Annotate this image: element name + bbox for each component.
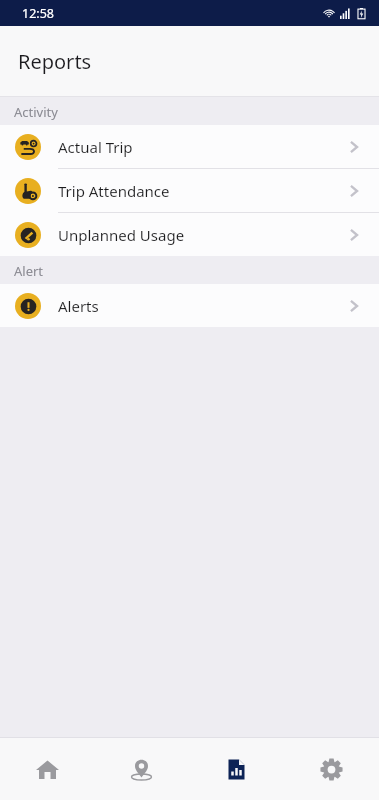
button[interactable]: Unplanned Usage <box>0 213 379 256</box>
staticText: Activity <box>14 103 58 121</box>
button[interactable]: Trip Attendance <box>0 169 379 212</box>
button[interactable]: Reports <box>189 738 284 800</box>
staticText: 12:58 <box>22 5 54 22</box>
button[interactable]: Map <box>94 738 189 800</box>
button[interactable]: Actual Trip <box>0 125 379 168</box>
button[interactable]: Settings <box>284 738 379 800</box>
staticText: Reports <box>18 48 92 75</box>
staticText: Alert <box>14 262 44 280</box>
button[interactable]: Alerts <box>0 284 379 327</box>
staticText: Trip Attendance <box>58 181 345 201</box>
staticText: Actual Trip <box>58 137 345 157</box>
staticText: Unplanned Usage <box>58 225 345 245</box>
button[interactable]: Home <box>0 738 94 800</box>
staticText: Alerts <box>58 296 345 316</box>
